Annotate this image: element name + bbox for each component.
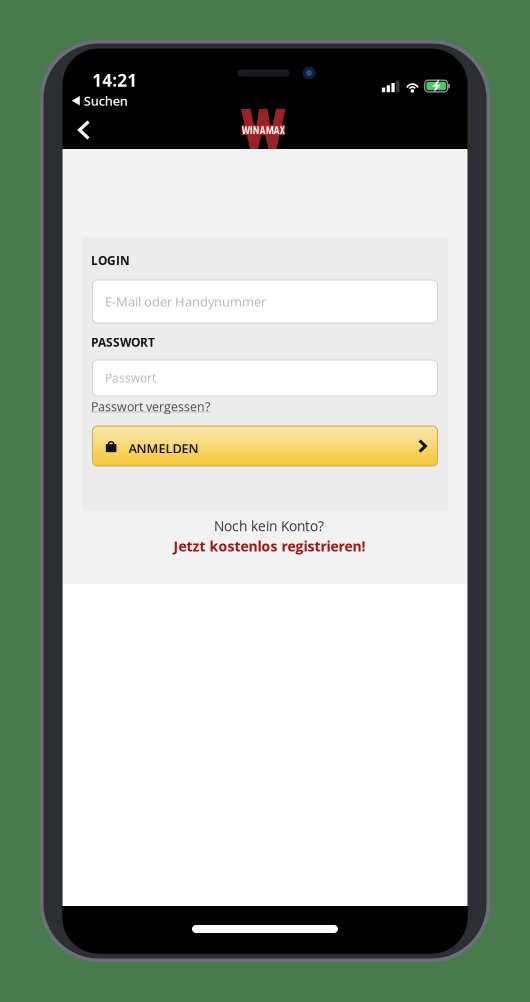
- staticText: Suchen: [84, 92, 128, 109]
- staticText: Noch kein Konto?: [214, 516, 324, 535]
- button[interactable]: Passwort: [92, 360, 437, 396]
- staticText: WINAMAX: [242, 123, 285, 137]
- staticText: Jetzt kostenlos registrieren!: [173, 536, 365, 555]
- button[interactable]: ANMELDEN: [92, 426, 437, 466]
- staticText: Passwort: [105, 370, 156, 386]
- button[interactable]: E-Mail oder Handynummer: [92, 280, 437, 323]
- staticText: 14:21: [92, 69, 137, 92]
- button[interactable]: Back: [62, 110, 106, 150]
- staticText: PASSWORT: [91, 334, 155, 350]
- button[interactable]: Jetzt kostenlos registrieren!: [173, 536, 365, 555]
- staticText: Passwort vergessen?: [91, 398, 210, 415]
- staticText: LOGIN: [91, 252, 130, 268]
- staticText: ANMELDEN: [128, 439, 198, 457]
- button[interactable]: Passwort vergessen?: [91, 398, 210, 415]
- staticText: E-Mail oder Handynummer: [105, 293, 266, 310]
